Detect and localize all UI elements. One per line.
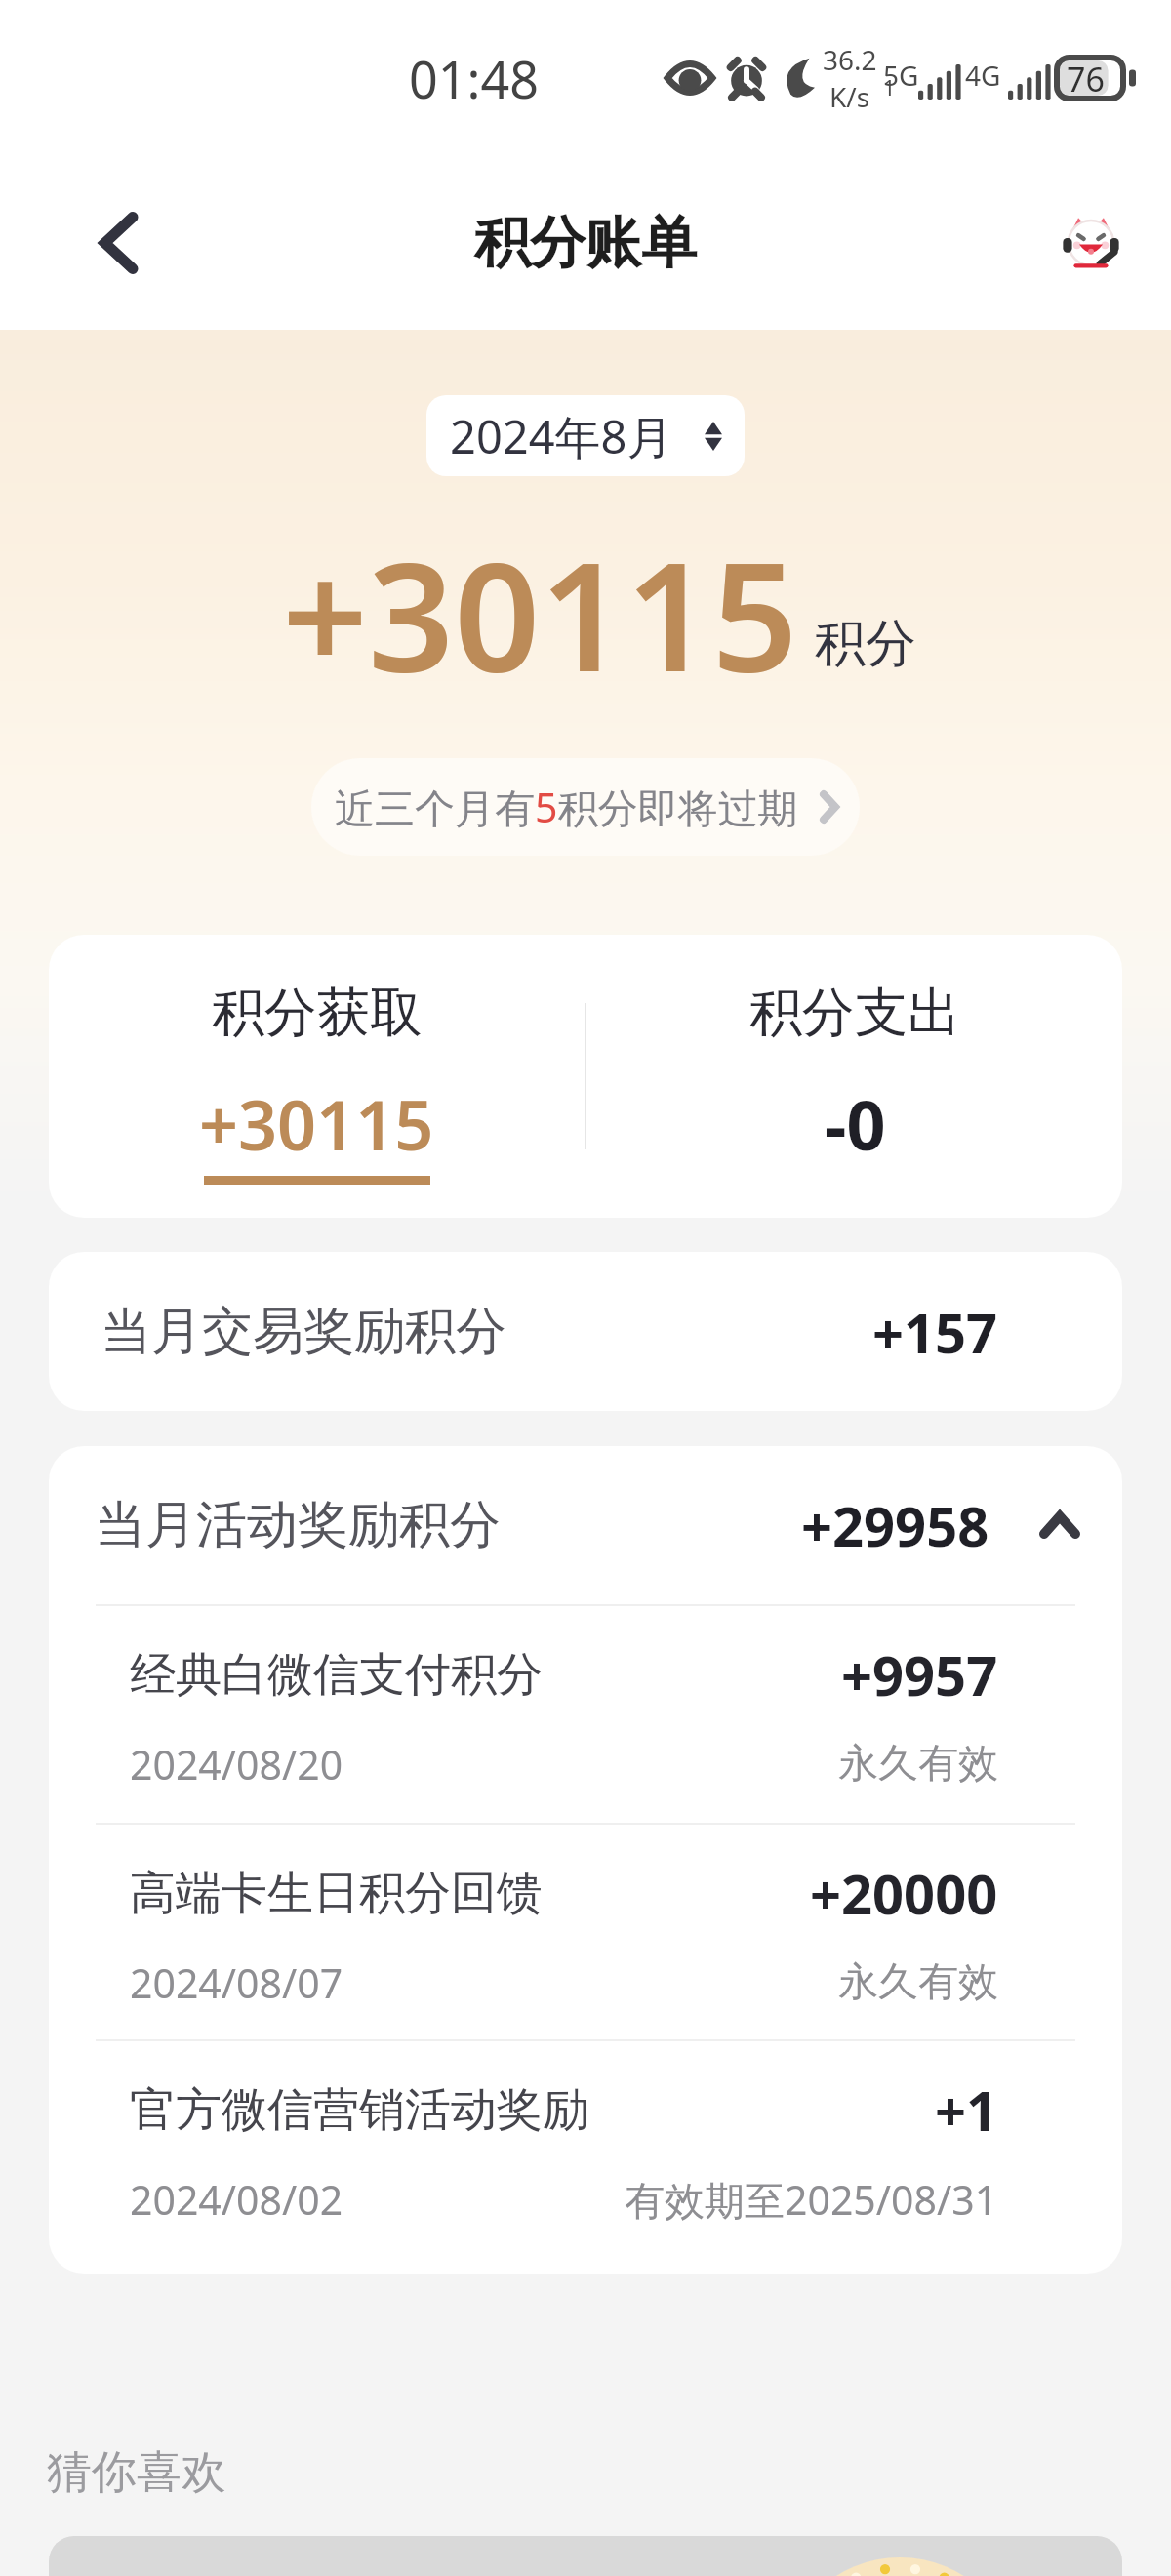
staticText: +29958 [801, 1488, 989, 1562]
staticText: 猜你喜欢 [47, 2444, 226, 2501]
staticText: +9957 [841, 1637, 998, 1711]
staticText: 有效期至2025/08/31 [625, 2172, 998, 2227]
staticText: 01:48 [409, 44, 539, 113]
staticText: 官方微信营销活动奖励 [130, 2081, 588, 2139]
staticText: 永久有效 [838, 1739, 998, 1790]
staticText: 经典白微信支付积分 [130, 1646, 543, 1704]
staticText: 当月交易奖励积分 [101, 1300, 506, 1364]
staticText: 积分获取 [212, 980, 423, 1046]
staticText: +157 [872, 1295, 998, 1369]
staticText: K/s [829, 78, 870, 115]
staticText: 2024/08/07 [130, 1955, 343, 2010]
button[interactable]: 2024年8月 [426, 395, 745, 476]
staticText: 当月活动奖励积分 [95, 1493, 801, 1557]
staticText: 36.2 [823, 41, 877, 78]
staticText: 5G [883, 57, 919, 94]
staticText: +30115 [282, 510, 798, 715]
staticText: 积分 [815, 612, 916, 676]
staticText: 1 [883, 72, 896, 101]
staticText: 永久有效 [838, 1957, 998, 2008]
staticText: 积分账单 [474, 208, 697, 278]
staticText: 76 [1067, 57, 1105, 98]
button[interactable]: 猜你喜欢推荐商品 [49, 2536, 1122, 2576]
button[interactable]: Back [70, 194, 168, 292]
staticText: +1 [935, 2073, 998, 2147]
button[interactable]: 近三个月有5积分即将过期 [311, 758, 860, 856]
staticText: 2024/08/02 [130, 2172, 343, 2227]
button[interactable]: 当月活动奖励积分 [49, 1446, 1122, 1604]
button[interactable]: 当月交易奖励积分 [49, 1252, 1122, 1411]
staticText: -0 [825, 1077, 886, 1170]
staticText: 高端卡生日积分回馈 [130, 1865, 543, 1922]
staticText: 近三个月有5积分即将过期 [335, 780, 798, 834]
staticText: 4G [965, 57, 1001, 94]
button[interactable]: Customer service [1046, 198, 1136, 288]
staticText: 2024/08/20 [130, 1737, 343, 1791]
staticText: 2024年8月 [450, 405, 673, 467]
staticText: +30115 [199, 1077, 434, 1170]
staticText: 积分支出 [749, 980, 960, 1046]
staticText: +20000 [810, 1856, 998, 1930]
